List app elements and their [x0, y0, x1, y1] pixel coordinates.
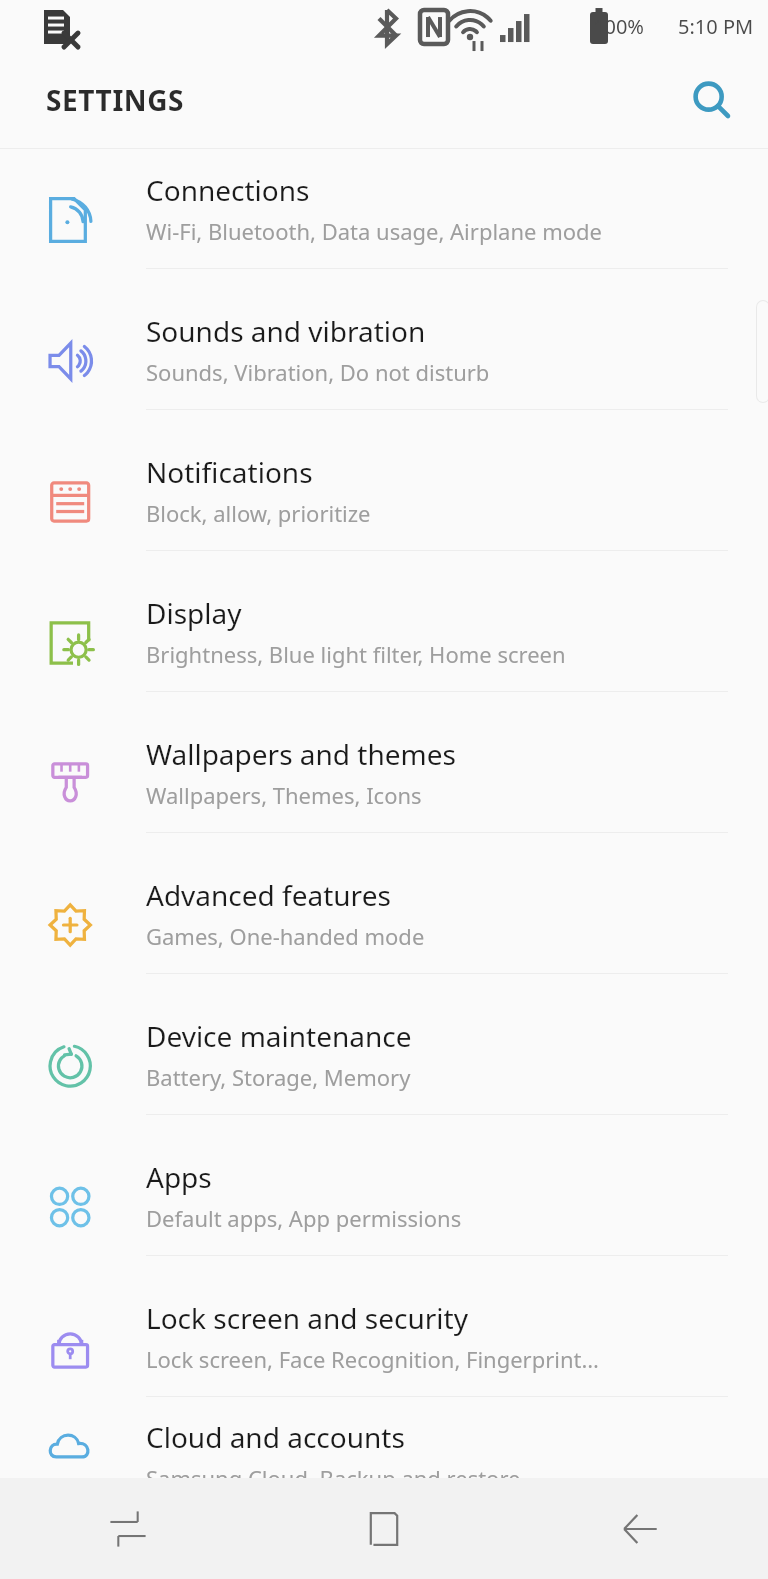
staticText: Device maintenance — [146, 1017, 412, 1055]
button[interactable]: Wallpapers and themes — [0, 713, 768, 854]
button[interactable]: Sounds and vibration — [0, 290, 768, 431]
staticText: Games, One-handed mode — [146, 921, 425, 951]
staticText: Wi-Fi, Bluetooth, Data usage, Airplane m… — [146, 216, 602, 246]
button[interactable]: Recents — [0, 1478, 256, 1579]
staticText: Display — [146, 594, 242, 632]
button[interactable]: Cloud and accounts — [0, 1418, 768, 1478]
staticText: Advanced features — [146, 876, 391, 914]
staticText: Block, allow, prioritize — [146, 498, 371, 528]
staticText: SETTINGS — [46, 81, 185, 119]
button[interactable]: Display — [0, 572, 768, 713]
staticText: Apps — [146, 1158, 212, 1196]
button[interactable]: Home — [256, 1478, 512, 1579]
staticText: Battery, Storage, Memory — [146, 1062, 411, 1092]
staticText: Wallpapers, Themes, Icons — [146, 780, 422, 810]
staticText: Cloud and accounts — [146, 1418, 405, 1456]
staticText: Notifications — [146, 453, 313, 491]
staticText: Connections — [146, 171, 310, 209]
staticText: 100% — [593, 13, 644, 40]
button[interactable]: Search — [682, 70, 742, 130]
staticText: Samsung Cloud, Backup and restore — [146, 1463, 521, 1478]
staticText: Lock screen, Face Recognition, Fingerpri… — [146, 1344, 599, 1374]
button[interactable]: Apps — [0, 1136, 768, 1277]
button[interactable]: Connections — [0, 149, 768, 290]
staticText: Lock screen and security — [146, 1299, 468, 1337]
staticText: Sounds, Vibration, Do not disturb — [146, 357, 490, 387]
button[interactable]: Back — [512, 1478, 768, 1579]
button[interactable]: Device maintenance — [0, 995, 768, 1136]
button[interactable]: Lock screen and security — [0, 1277, 768, 1418]
button[interactable]: Notifications — [0, 431, 768, 572]
staticText: Sounds and vibration — [146, 312, 426, 350]
staticText: Wallpapers and themes — [146, 735, 456, 773]
staticText: 5:10 PM — [678, 13, 754, 40]
staticText: Default apps, App permissions — [146, 1203, 462, 1233]
button[interactable]: Advanced features — [0, 854, 768, 995]
staticText: Brightness, Blue light filter, Home scre… — [146, 639, 566, 669]
